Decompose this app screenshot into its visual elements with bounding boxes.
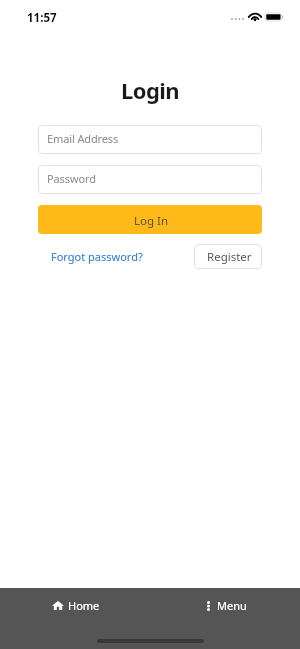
button[interactable]: Register — [194, 244, 262, 269]
button[interactable]: Menu — [150, 588, 300, 623]
button[interactable]: Email Address — [38, 125, 262, 154]
button[interactable]: Forgot password? — [38, 244, 156, 269]
button[interactable]: Log In — [38, 205, 262, 234]
staticText: Log In — [134, 213, 169, 229]
staticText: Email Address — [47, 131, 119, 146]
staticText: Menu — [217, 598, 247, 613]
staticText: Login — [0, 75, 300, 105]
staticText: 11:57 — [27, 10, 57, 26]
staticText: Forgot password? — [51, 249, 143, 264]
button[interactable]: Home — [0, 588, 150, 623]
button[interactable]: Password — [38, 165, 262, 194]
staticText: Password — [47, 171, 96, 186]
staticText: Home — [68, 598, 100, 613]
staticText: Register — [207, 249, 252, 265]
